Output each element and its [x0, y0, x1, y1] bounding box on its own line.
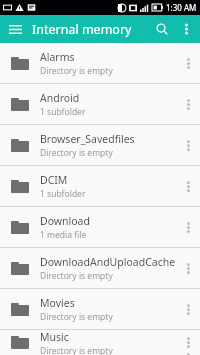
button[interactable]: Item options [176, 330, 200, 355]
staticText: Android [40, 91, 80, 105]
button[interactable]: Browser_Savedfiles [0, 125, 200, 165]
staticText: Music [40, 330, 69, 344]
staticText: 1 subfolder [40, 188, 86, 200]
button[interactable]: Item options [176, 84, 200, 124]
button[interactable]: DCIM [0, 166, 200, 206]
staticText: DCIM [40, 173, 68, 187]
staticText: Directory is empty [40, 65, 113, 77]
staticText: 1 media file [40, 229, 87, 241]
button[interactable]: Alarms [0, 43, 200, 83]
button[interactable]: Download [0, 207, 200, 247]
staticText: Movies [40, 296, 75, 310]
button[interactable]: Item options [176, 43, 200, 83]
button[interactable]: Item options [176, 125, 200, 165]
staticText: 1 subfolder [40, 106, 86, 118]
button[interactable]: Search [150, 17, 174, 41]
button[interactable]: Music [0, 330, 200, 355]
staticText: Directory is empty [40, 345, 113, 355]
staticText: Internal memory [32, 21, 132, 38]
button[interactable]: Android [0, 84, 200, 124]
staticText: Download [40, 214, 90, 228]
button[interactable]: Open navigation drawer [4, 18, 26, 40]
staticText: Alarms [40, 50, 75, 64]
button[interactable]: More options [174, 17, 198, 41]
staticText: 1:30 AM [166, 2, 197, 13]
button[interactable]: Item options [176, 166, 200, 206]
button[interactable]: DownloadAndUploadCache [0, 248, 200, 288]
staticText: Browser_Savedfiles [40, 132, 135, 146]
staticText: Directory is empty [40, 311, 113, 323]
button[interactable]: Item options [176, 248, 200, 288]
staticText: Directory is empty [40, 147, 113, 159]
button[interactable]: Movies [0, 289, 200, 329]
staticText: DownloadAndUploadCache [40, 255, 176, 269]
button[interactable]: Item options [176, 289, 200, 329]
staticText: Directory is empty [40, 270, 113, 282]
button[interactable]: Item options [176, 207, 200, 247]
